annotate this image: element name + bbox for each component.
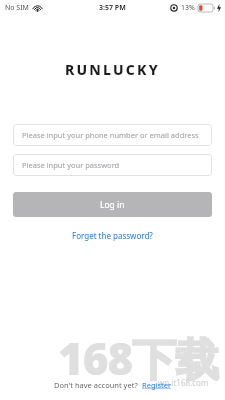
staticText: Log in [100, 199, 125, 211]
staticText: 3:57 PM [99, 3, 126, 13]
button[interactable]: Please input your phone number or email … [13, 124, 212, 146]
staticText: 13% [181, 3, 195, 13]
staticText: No SIM [5, 3, 29, 13]
button[interactable]: Forget the password? [72, 230, 153, 241]
button[interactable]: Log in [13, 192, 212, 217]
staticText: Forget the password? [72, 230, 153, 241]
staticText: wn.it168.com [158, 377, 209, 388]
staticText: Please input your phone number or email … [22, 130, 199, 140]
staticText: Please input your password [22, 160, 120, 170]
button[interactable]: Please input your password [13, 154, 212, 176]
staticText: Don't have account yet? [54, 380, 142, 390]
staticText: RUNLUCKY [65, 60, 160, 79]
staticText: Register [142, 380, 172, 390]
button[interactable]: Register [142, 380, 172, 390]
staticText: 168下载 [58, 328, 219, 388]
